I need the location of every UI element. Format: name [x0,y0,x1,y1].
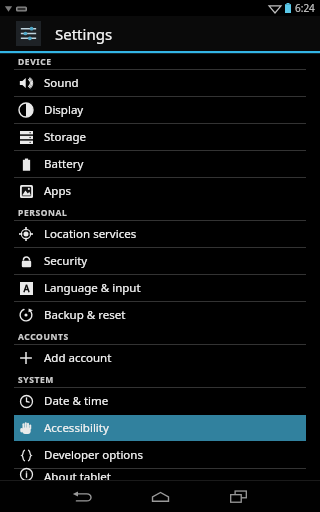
staticText: ACCOUNTS [18,331,69,343]
button[interactable]: Add account [0,345,320,371]
staticText: SYSTEM [18,374,54,386]
staticText: Add account [44,350,112,366]
button[interactable]: Accessibility [14,415,306,441]
button[interactable]: Back [61,481,103,512]
button[interactable]: Backup & reset [0,302,320,328]
staticText: PERSONAL [18,207,68,219]
button[interactable]: About tablet [0,469,320,480]
staticText: Display [44,102,84,118]
button[interactable]: Storage [0,124,320,150]
button[interactable]: Date & time [0,388,320,414]
staticText: Security [44,253,88,269]
button[interactable]: Battery [0,151,320,177]
staticText: 6:24 [295,1,315,15]
staticText: Backup & reset [44,307,126,323]
staticText: Date & time [44,393,109,409]
staticText: Battery [44,156,84,172]
staticText: Settings [55,24,113,44]
staticText: Apps [44,183,72,199]
button[interactable]: Security [0,248,320,274]
button[interactable]: Home [139,481,181,512]
button[interactable]: Settings app icon [16,21,41,46]
staticText: DEVICE [18,56,52,68]
button[interactable]: Developer options [0,442,320,468]
staticText: Developer options [44,447,143,463]
button[interactable]: Language & input [0,275,320,301]
staticText: Language & input [44,280,141,296]
button[interactable]: Sound [0,70,320,96]
staticText: Accessibility [44,420,109,436]
staticText: Storage [44,129,86,145]
staticText: Sound [44,75,79,91]
button[interactable]: Display [0,97,320,123]
staticText: Location services [44,226,137,242]
button[interactable]: Apps [0,178,320,204]
staticText: About tablet [44,469,111,480]
button[interactable]: Location services [0,221,320,247]
button[interactable]: Recent apps [217,481,259,512]
